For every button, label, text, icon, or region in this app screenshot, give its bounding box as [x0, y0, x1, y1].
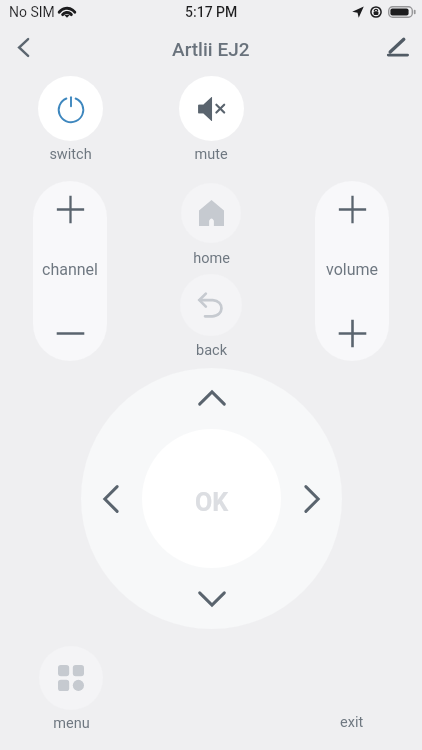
staticText: Artlii EJ2 [172, 38, 250, 60]
staticText: mute [194, 146, 228, 163]
button[interactable]: volume up [315, 181, 389, 237]
staticText: menu [53, 715, 90, 732]
staticText: channel [42, 260, 98, 279]
staticText: home [193, 250, 230, 267]
button[interactable]: Edit [375, 26, 419, 68]
button[interactable]: volume down [315, 305, 389, 361]
button[interactable]: Up [186, 372, 238, 424]
button[interactable]: home [181, 183, 241, 243]
staticText: back [196, 342, 227, 359]
button[interactable]: exit [322, 711, 382, 733]
staticText: volume [326, 260, 378, 279]
button[interactable]: back [180, 274, 242, 336]
staticText: switch [49, 146, 92, 163]
button[interactable]: menu [39, 646, 103, 710]
staticText: OK [195, 488, 229, 517]
button[interactable]: switch [38, 76, 103, 141]
button[interactable]: channel up [33, 181, 107, 237]
button[interactable]: Down [186, 573, 238, 625]
staticText: exit [340, 714, 364, 731]
button[interactable]: Back [1, 26, 45, 68]
button[interactable]: Left [85, 473, 137, 525]
button[interactable]: channel down [33, 305, 107, 361]
staticText: 5:17 PM [185, 4, 238, 20]
button[interactable]: Right [286, 473, 338, 525]
button[interactable]: mute [179, 76, 244, 141]
staticText: No SIM [9, 4, 55, 20]
button[interactable]: OK [142, 429, 281, 568]
